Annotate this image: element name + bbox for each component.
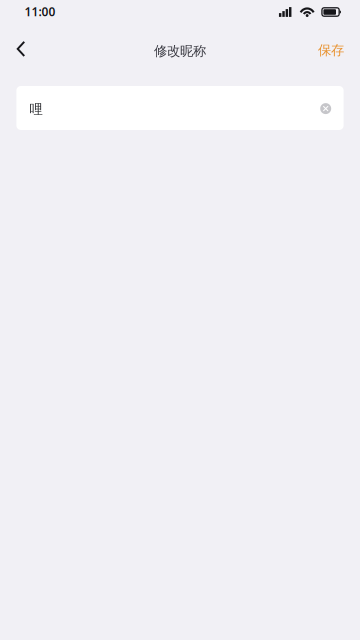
staticText: 哩 — [29, 101, 42, 118]
button[interactable]: 保存 — [300, 24, 360, 68]
staticText: 保存 — [318, 42, 344, 58]
button[interactable]: Back — [0, 24, 44, 68]
staticText: 11:00 — [24, 4, 55, 20]
button[interactable]: Clear text — [310, 93, 340, 123]
staticText: 修改昵称 — [154, 43, 206, 59]
button[interactable]: 哩 — [16, 86, 344, 130]
